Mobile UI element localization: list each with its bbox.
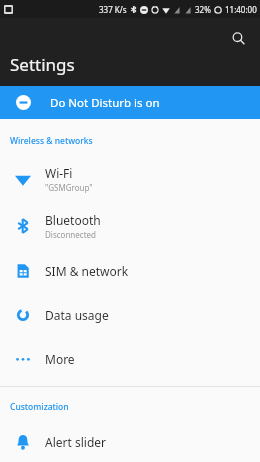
staticText: SIM & network [45, 263, 129, 279]
staticText: Wireless & networks [10, 135, 93, 147]
staticText: "GSMGroup" [45, 182, 93, 193]
staticText: Do Not Disturb is on [50, 95, 160, 111]
button[interactable]: SIM & network [0, 249, 260, 293]
staticText: Alert slider [45, 434, 106, 450]
button[interactable]: Alert slider [0, 421, 260, 462]
staticText: Bluetooth [45, 212, 101, 228]
button[interactable]: Data usage [0, 293, 260, 337]
staticText: Settings [10, 53, 75, 76]
staticText: Disconnected [45, 229, 96, 240]
staticText: Data usage [45, 307, 109, 323]
button[interactable]: More [0, 337, 260, 381]
button[interactable]: Wi-Fi [0, 155, 260, 202]
button[interactable]: Bluetooth [0, 202, 260, 249]
staticText: 32% [195, 4, 211, 15]
staticText: More [45, 351, 75, 367]
staticText: Wi-Fi [45, 165, 73, 181]
button[interactable]: Search [224, 24, 252, 52]
staticText: 11:40:00 [225, 4, 257, 15]
staticText: 337 K/s [99, 4, 127, 15]
button[interactable]: Do Not Disturb is on [0, 86, 260, 119]
staticText: Customization [10, 401, 69, 413]
